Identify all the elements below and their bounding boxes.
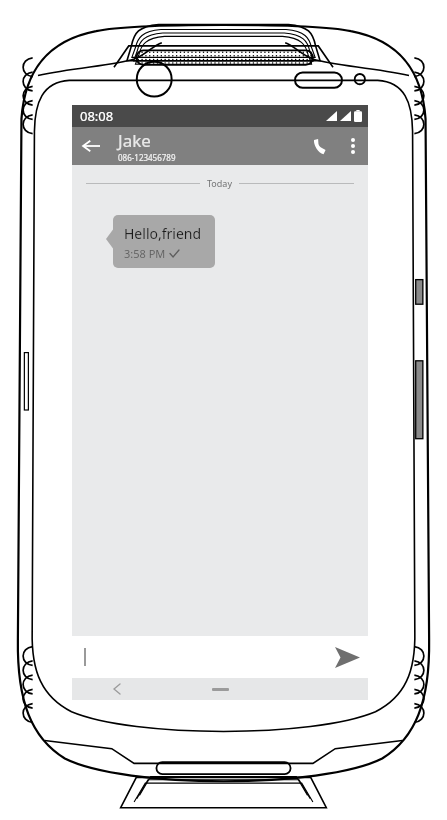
button[interactable]: Home <box>185 678 255 700</box>
button[interactable]: Hello,friend <box>113 215 215 268</box>
staticText: 08:08 <box>80 107 114 125</box>
staticText: Hello,friend <box>124 224 202 243</box>
staticText: Jake <box>118 129 151 152</box>
button[interactable]: More options <box>338 131 368 161</box>
staticText: Today <box>207 177 232 189</box>
button[interactable]: Back <box>72 678 162 700</box>
staticText: 086-123456789 <box>118 152 176 163</box>
button[interactable]: Call <box>304 129 338 163</box>
button[interactable]: Back <box>72 127 110 165</box>
button[interactable]: Send <box>326 636 368 678</box>
staticText: 3:58 PM <box>124 246 166 261</box>
